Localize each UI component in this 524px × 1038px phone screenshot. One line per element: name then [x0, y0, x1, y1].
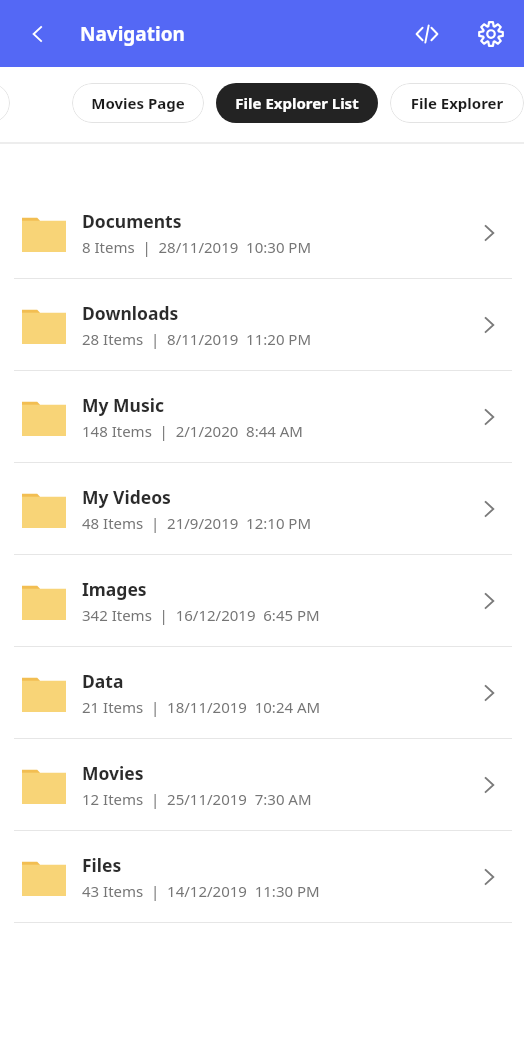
button[interactable]: Settings — [468, 11, 514, 57]
button[interactable]: Back — [16, 12, 60, 56]
button[interactable]: Movies Page — [72, 83, 204, 123]
staticText: My Videos — [82, 485, 171, 509]
button[interactable]: Files — [0, 831, 524, 922]
staticText: File Explorer Grid — [409, 93, 505, 113]
button[interactable] — [0, 83, 10, 123]
button[interactable]: Data — [0, 647, 524, 738]
button[interactable]: My Music — [0, 371, 524, 462]
button[interactable]: Movies — [0, 739, 524, 830]
staticText: 148 Items | 2/1/2020 8:44 AM — [82, 421, 303, 441]
staticText: Navigation — [80, 21, 185, 47]
staticText: Files — [82, 853, 122, 877]
staticText: 48 Items | 21/9/2019 12:10 PM — [82, 513, 312, 533]
button[interactable]: Documents — [0, 187, 524, 278]
staticText: Data — [82, 669, 124, 693]
button[interactable]: Images — [0, 555, 524, 646]
button[interactable]: File Explorer Grid — [390, 83, 524, 123]
staticText: My Music — [82, 393, 164, 417]
staticText: 28 Items | 8/11/2019 11:20 PM — [82, 329, 312, 349]
staticText: 12 Items | 25/11/2019 7:30 AM — [82, 789, 312, 809]
staticText: 21 Items | 18/11/2019 10:24 AM — [82, 697, 321, 717]
staticText: 43 Items | 14/12/2019 11:30 PM — [82, 881, 320, 901]
button[interactable]: File Explorer List — [216, 83, 378, 123]
staticText: Downloads — [82, 301, 179, 325]
button[interactable]: My Videos — [0, 463, 524, 554]
staticText: Movies — [82, 761, 144, 785]
staticText: Movies Page — [91, 93, 185, 113]
staticText: Images — [82, 577, 147, 601]
staticText: Documents — [82, 209, 182, 233]
button[interactable]: Downloads — [0, 279, 524, 370]
staticText: 342 Items | 16/12/2019 6:45 PM — [82, 605, 320, 625]
staticText: 8 Items | 28/11/2019 10:30 PM — [82, 237, 312, 257]
button[interactable]: View source code — [404, 11, 450, 57]
staticText: File Explorer List — [235, 93, 359, 113]
